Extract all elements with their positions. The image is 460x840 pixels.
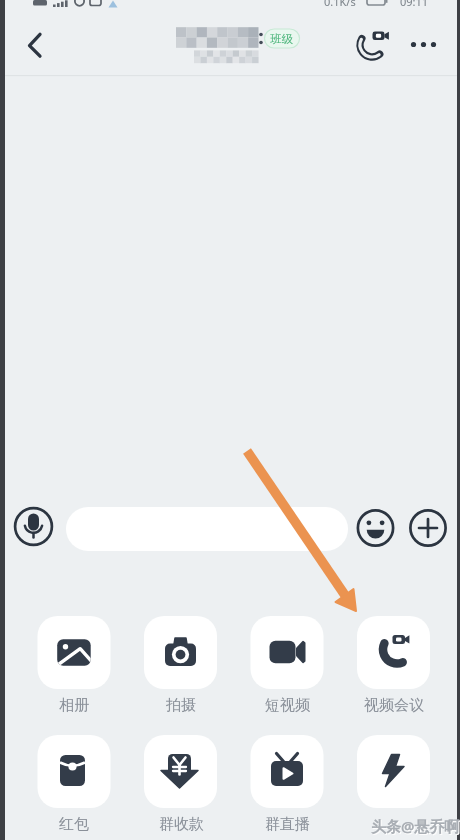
staticText: 头条@悬乔啊 xyxy=(372,817,460,837)
button[interactable] xyxy=(409,509,447,547)
staticText: 群收款 xyxy=(159,815,204,834)
button[interactable] xyxy=(350,24,392,66)
button[interactable] xyxy=(144,735,217,808)
button[interactable] xyxy=(357,509,395,547)
staticText: 视频会议 xyxy=(364,696,424,715)
staticText: 0.1K/s xyxy=(324,0,356,9)
button[interactable] xyxy=(38,616,111,689)
staticText: 班级 xyxy=(270,32,293,46)
button[interactable] xyxy=(16,26,54,66)
button[interactable] xyxy=(251,735,324,808)
staticText: 红包 xyxy=(59,815,89,834)
staticText: 相册 xyxy=(59,696,89,715)
button[interactable] xyxy=(404,26,444,64)
button[interactable] xyxy=(14,507,54,547)
button[interactable] xyxy=(66,507,348,551)
staticText: 短视频 xyxy=(265,696,310,715)
button[interactable] xyxy=(251,616,324,689)
button[interactable] xyxy=(38,735,111,808)
staticText: 头条@悬乔啊 xyxy=(371,816,460,836)
staticText: 拍摄 xyxy=(166,696,196,715)
button[interactable] xyxy=(144,616,217,689)
button[interactable] xyxy=(357,616,430,689)
staticText: 群直播 xyxy=(265,815,310,834)
staticText: 09:11 xyxy=(400,0,429,9)
button[interactable] xyxy=(357,735,430,808)
